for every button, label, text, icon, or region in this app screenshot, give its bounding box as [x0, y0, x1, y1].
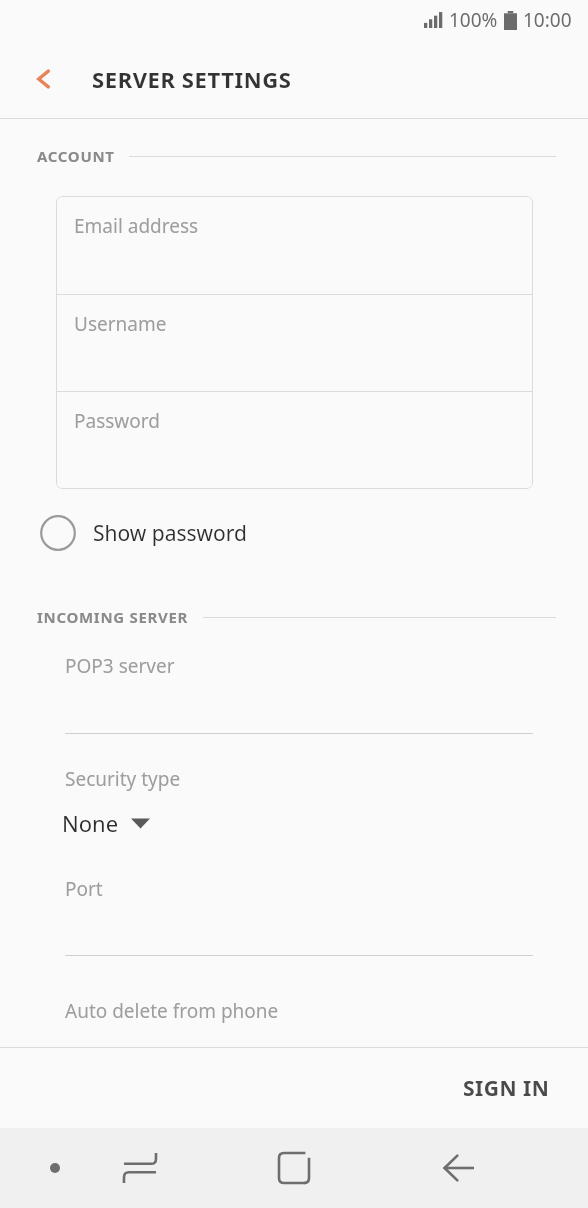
button[interactable]: None	[62, 802, 222, 844]
button[interactable]: Username	[56, 294, 533, 391]
staticText: ACCOUNT	[37, 146, 115, 166]
button[interactable]: Home	[254, 1128, 334, 1208]
button[interactable]: Back	[418, 1128, 498, 1208]
staticText: 10:00	[523, 7, 572, 33]
staticText: POP3 server	[65, 653, 175, 679]
staticText: None	[62, 808, 119, 838]
staticText: Security type	[65, 766, 181, 792]
button[interactable]: SIGN IN	[449, 1062, 564, 1115]
staticText: SIGN IN	[463, 1074, 550, 1103]
staticText: Password	[74, 408, 160, 434]
staticText: INCOMING SERVER	[37, 607, 189, 627]
staticText: 100%	[449, 7, 498, 33]
staticText: SERVER SETTINGS	[92, 64, 292, 94]
button[interactable]: Password	[56, 391, 533, 488]
staticText: Email address	[74, 213, 199, 239]
button[interactable]: Menu	[15, 1128, 95, 1208]
button[interactable]: Recents	[100, 1128, 180, 1208]
staticText: Port	[65, 876, 103, 902]
staticText: Show password	[93, 519, 247, 548]
button[interactable]: Show password	[40, 505, 340, 561]
button[interactable]: Email address	[56, 196, 533, 293]
staticText: Auto delete from phone	[65, 998, 279, 1024]
button[interactable]: Back	[22, 57, 66, 101]
staticText: Username	[74, 311, 167, 337]
